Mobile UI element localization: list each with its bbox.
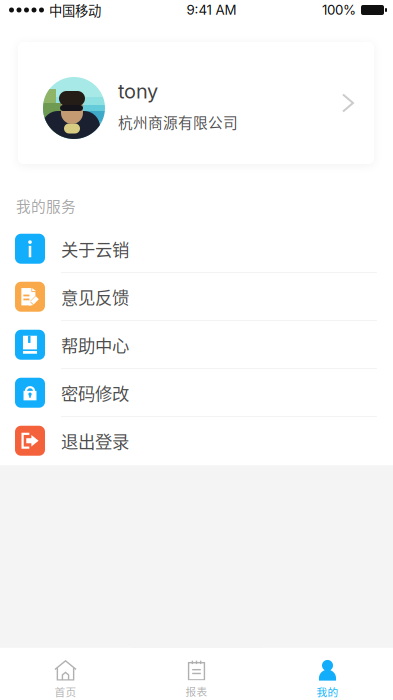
button[interactable]: 我的 [262, 648, 393, 700]
staticText: 我的 [316, 684, 338, 699]
button[interactable]: 关于云销 [0, 225, 393, 273]
staticText: 报表 [185, 683, 207, 699]
staticText: 首页 [54, 684, 76, 699]
staticText: 100% [322, 2, 356, 18]
staticText: 9:41 AM [186, 2, 236, 18]
staticText: 帮助中心 [61, 332, 129, 357]
staticText: tony [118, 79, 158, 103]
staticText: 关于云销 [61, 236, 129, 261]
staticText: 意见反馈 [61, 284, 129, 309]
button[interactable]: 首页 [0, 648, 131, 700]
button[interactable]: 密码修改 [0, 369, 393, 417]
staticText: 中国移动 [49, 0, 101, 20]
button[interactable]: 退出登录 [0, 417, 393, 465]
staticText: 退出登录 [61, 428, 129, 453]
button[interactable]: 意见反馈 [0, 273, 393, 321]
staticText: 密码修改 [61, 380, 129, 405]
button[interactable]: 帮助中心 [0, 321, 393, 369]
button[interactable]: tony [18, 42, 374, 164]
staticText: 我的服务 [16, 195, 76, 216]
staticText: 杭州商源有限公司 [118, 111, 238, 132]
button[interactable]: 报表 [131, 648, 262, 700]
